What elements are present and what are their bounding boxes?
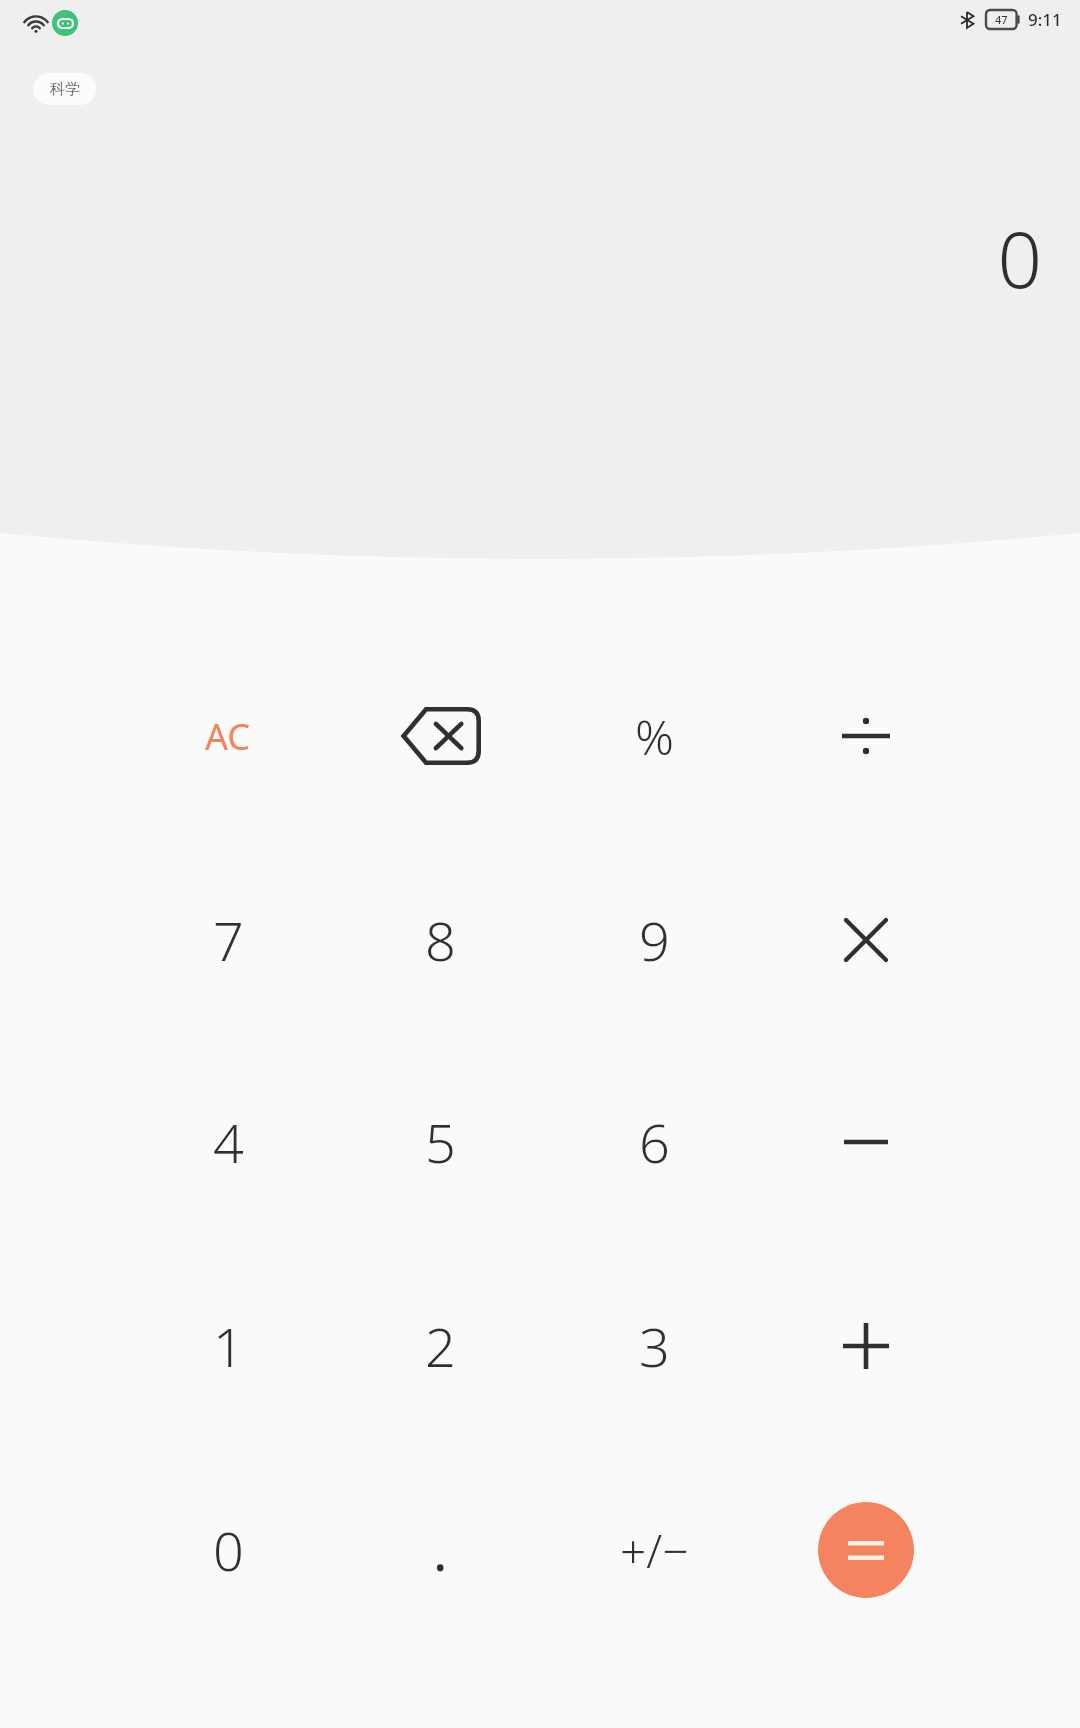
button[interactable]: 8 xyxy=(345,860,535,1020)
button[interactable]: Add xyxy=(771,1266,961,1426)
staticText: 0 xyxy=(213,1513,244,1587)
staticText: 9 xyxy=(639,903,670,977)
button[interactable]: 7 xyxy=(133,860,323,1020)
staticText: 科学 xyxy=(50,80,80,99)
button[interactable]: Backspace xyxy=(345,656,535,816)
button[interactable]: 4 xyxy=(133,1062,323,1222)
button[interactable]: Divide xyxy=(771,656,961,816)
staticText: 0 xyxy=(0,205,1042,311)
button[interactable]: Subtract xyxy=(771,1062,961,1222)
staticText: 2 xyxy=(425,1309,456,1383)
button[interactable]: AC xyxy=(133,656,323,816)
button[interactable]: 2 xyxy=(345,1266,535,1426)
staticText: +/− xyxy=(620,1519,689,1582)
button[interactable]: 0 xyxy=(133,1470,323,1630)
staticText: AC xyxy=(205,712,251,761)
button[interactable]: Equals xyxy=(818,1502,914,1598)
staticText: 9:11 xyxy=(1028,8,1062,31)
button[interactable]: 1 xyxy=(133,1266,323,1426)
staticText: % xyxy=(635,704,674,769)
button[interactable]: % xyxy=(559,656,749,816)
staticText: 6 xyxy=(639,1105,670,1179)
staticText: 1 xyxy=(213,1309,244,1383)
staticText: 8 xyxy=(425,903,456,977)
staticText: 5 xyxy=(425,1105,456,1179)
staticText: . xyxy=(433,1513,448,1587)
staticText: 3 xyxy=(639,1309,670,1383)
staticText: 7 xyxy=(213,903,244,977)
button[interactable]: 9 xyxy=(559,860,749,1020)
staticText: 47 xyxy=(995,12,1008,27)
button[interactable]: 5 xyxy=(345,1062,535,1222)
button[interactable]: +/− xyxy=(559,1470,749,1630)
button[interactable]: 6 xyxy=(559,1062,749,1222)
button[interactable]: Multiply xyxy=(771,860,961,1020)
button[interactable]: 3 xyxy=(559,1266,749,1426)
button[interactable]: . xyxy=(345,1470,535,1630)
button[interactable]: 科学 xyxy=(33,73,96,105)
staticText: 4 xyxy=(213,1105,244,1179)
